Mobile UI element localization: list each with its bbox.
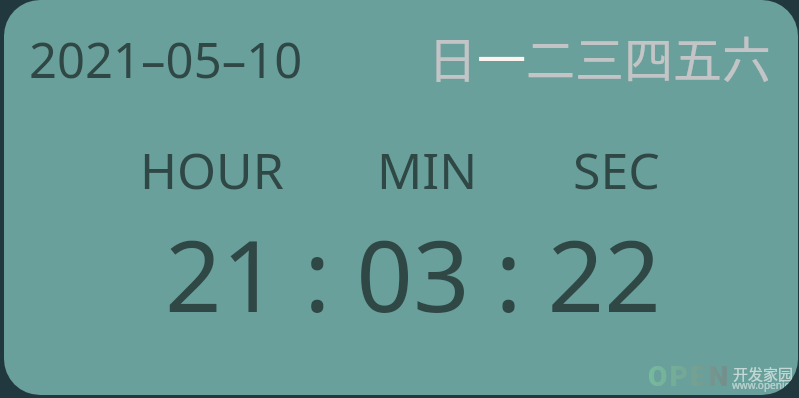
staticText: 开发家园 xyxy=(733,363,794,385)
staticText: www.openjq.com xyxy=(732,378,798,392)
button[interactable]: 21 : 03 : 22 xyxy=(165,206,661,341)
button[interactable]: SEC xyxy=(573,136,660,204)
staticText: 一 xyxy=(477,21,526,92)
staticText: 二 xyxy=(526,21,575,92)
button[interactable]: HOUR xyxy=(140,136,284,204)
button[interactable]: 三 xyxy=(575,21,624,92)
staticText: 三 xyxy=(575,21,624,92)
button[interactable]: 日 xyxy=(428,21,477,92)
button[interactable]: MIN xyxy=(377,136,478,204)
button[interactable]: 一 xyxy=(477,21,526,92)
staticText: 五 xyxy=(673,21,722,92)
staticText: OPEN xyxy=(648,360,731,393)
staticText: 四 xyxy=(624,21,673,92)
button[interactable]: 四 xyxy=(624,21,673,92)
button[interactable]: 二 xyxy=(526,21,575,92)
button[interactable]: 2021–05–10 xyxy=(29,26,303,93)
button[interactable]: 六 xyxy=(722,21,771,92)
button[interactable]: 五 xyxy=(673,21,722,92)
staticText: 日 xyxy=(428,21,477,92)
staticText: 六 xyxy=(722,21,771,92)
